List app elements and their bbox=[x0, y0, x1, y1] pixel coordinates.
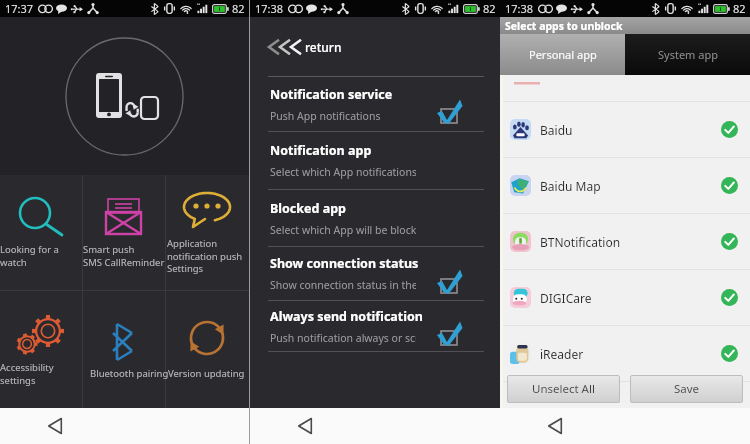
button[interactable]: Notification service bbox=[250, 77, 500, 132]
staticText: Baidu Map bbox=[540, 178, 601, 194]
button[interactable]: Notification app bbox=[250, 132, 500, 190]
button[interactable]: Smart push SMS CallReminder bbox=[82, 175, 165, 290]
button[interactable]: Blocked app bbox=[250, 190, 500, 247]
staticText: Version updating bbox=[168, 367, 245, 380]
button[interactable]: Looking for a watch bbox=[0, 175, 82, 290]
staticText: iReader bbox=[540, 346, 584, 362]
button[interactable]: Unselect All bbox=[507, 375, 620, 403]
staticText: Blocked app bbox=[270, 200, 346, 217]
staticText: Select apps to unblock bbox=[505, 19, 623, 33]
staticText: Select which App notifications to push bbox=[270, 165, 416, 179]
staticText: Personal app bbox=[529, 47, 597, 62]
staticText: Unselect All bbox=[532, 381, 595, 397]
staticText: Show connection status bbox=[270, 255, 419, 272]
staticText: Push notification always or screen off bbox=[270, 331, 416, 345]
button[interactable]: Accessibility settings bbox=[0, 291, 82, 408]
button[interactable]: DIGICare bbox=[500, 270, 750, 325]
button[interactable]: System app bbox=[625, 34, 750, 75]
staticText: Looking for a watch bbox=[0, 243, 59, 268]
staticText: 82 bbox=[733, 1, 746, 16]
staticText: 17:38 bbox=[255, 1, 284, 16]
button[interactable]: Baidu Map bbox=[500, 158, 750, 213]
staticText: Always send notification bbox=[270, 308, 423, 325]
staticText: 82 bbox=[483, 1, 496, 16]
staticText: System app bbox=[658, 47, 718, 62]
staticText: 17:37 bbox=[5, 1, 34, 16]
staticText: Baidu bbox=[540, 122, 573, 138]
staticText: Save bbox=[674, 381, 700, 397]
staticText: 17:38 bbox=[505, 1, 534, 16]
staticText: DIGICare bbox=[540, 290, 592, 306]
staticText: 82 bbox=[232, 1, 245, 16]
button[interactable]: Save bbox=[630, 375, 743, 403]
button[interactable]: Back bbox=[540, 411, 570, 441]
staticText: Show connection status in the bar bbox=[270, 278, 416, 292]
button[interactable]: Baidu bbox=[500, 102, 750, 157]
button[interactable]: Back bbox=[290, 411, 320, 441]
staticText: Select which App will be blocked bbox=[270, 223, 416, 237]
staticText: Push App notifications bbox=[270, 109, 381, 123]
staticText: Accessibility settings bbox=[0, 361, 54, 386]
staticText: Notification app bbox=[270, 142, 372, 159]
button[interactable]: Back bbox=[40, 411, 70, 441]
button[interactable]: iReader bbox=[500, 326, 750, 381]
staticText: BTNotification bbox=[540, 234, 621, 250]
button[interactable]: Show connection status bbox=[250, 247, 500, 301]
button[interactable]: Bluetooth pairing bbox=[82, 291, 165, 408]
button[interactable]: BTNotification bbox=[500, 214, 750, 269]
staticText: Application notification push Settings bbox=[167, 237, 243, 274]
staticText: Notification service bbox=[270, 86, 393, 103]
staticText: return bbox=[305, 39, 342, 55]
button[interactable]: return bbox=[250, 17, 500, 76]
button[interactable]: Application notification push Settings bbox=[165, 175, 249, 290]
button[interactable]: Personal app bbox=[500, 34, 625, 75]
staticText: Bluetooth pairing bbox=[90, 367, 169, 380]
button[interactable]: Always send notification bbox=[250, 301, 500, 352]
button[interactable]: Version updating bbox=[165, 291, 249, 408]
staticText: Smart push SMS CallReminder bbox=[83, 243, 165, 268]
